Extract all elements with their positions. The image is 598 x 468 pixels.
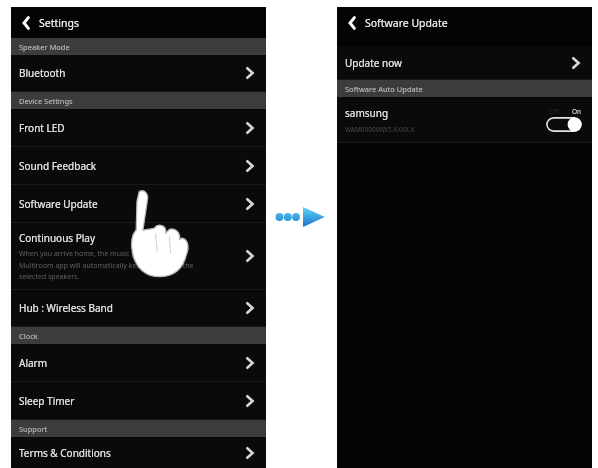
staticText: WAM0000WW5-XXXX.X	[345, 125, 415, 134]
button[interactable]: Bluetooth	[11, 55, 266, 92]
staticText: Settings	[39, 16, 79, 30]
button[interactable]: Back	[15, 12, 37, 34]
staticText: Bluetooth	[19, 66, 66, 80]
button[interactable]: Sound Feedback	[11, 147, 266, 185]
button[interactable]: Front LED	[11, 109, 266, 147]
staticText: Software Auto Update	[345, 84, 423, 94]
staticText: Speaker Mode	[19, 42, 70, 52]
staticText: Software Update	[19, 197, 98, 211]
staticText: Terms & Conditions	[19, 446, 111, 460]
staticText: Alarm	[19, 356, 48, 370]
staticText: Sound Feedback	[19, 159, 97, 173]
staticText: When you arrive home, the music playing …	[19, 249, 194, 281]
button[interactable]: Continuous Play	[11, 223, 266, 290]
staticText: Software Update	[365, 16, 448, 30]
button[interactable]: Update now	[337, 46, 592, 80]
button[interactable]: Software Update	[11, 185, 266, 223]
button[interactable]: Terms & Conditions	[11, 437, 266, 468]
staticText: Continuous Play	[19, 231, 96, 245]
button[interactable]: Sleep Timer	[11, 382, 266, 420]
staticText: Sleep Timer	[19, 394, 75, 408]
staticText: Support	[19, 424, 48, 434]
staticText: Front LED	[19, 121, 65, 135]
button[interactable]: samsung	[337, 97, 592, 143]
staticText: samsung	[345, 106, 389, 120]
button[interactable]: Hub : Wireless Band	[11, 290, 266, 327]
button[interactable]: Back	[341, 12, 363, 34]
button[interactable]: Alarm	[11, 344, 266, 382]
staticText: Device Settings	[19, 96, 73, 106]
staticText: Hub : Wireless Band	[19, 301, 113, 315]
button[interactable]: Auto update toggle, on	[544, 106, 584, 133]
staticText: Off	[549, 107, 559, 116]
staticText: Update now	[345, 56, 402, 70]
staticText: On	[572, 107, 582, 116]
staticText: Clock	[19, 331, 38, 341]
